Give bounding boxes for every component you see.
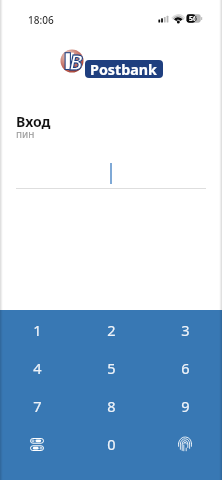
- button[interactable]: Fingerprint login: [148, 425, 222, 463]
- staticText: 5: [107, 358, 116, 378]
- staticText: 8: [107, 396, 116, 416]
- staticText: 7: [33, 396, 42, 416]
- button[interactable]: Settings: [0, 425, 74, 463]
- staticText: 0: [107, 434, 116, 454]
- button[interactable]: 7: [0, 387, 74, 425]
- button[interactable]: 3: [148, 311, 222, 349]
- button[interactable]: 0: [74, 425, 148, 463]
- button[interactable]: 2: [74, 311, 148, 349]
- staticText: пин: [16, 127, 35, 141]
- button[interactable]: 5: [74, 349, 148, 387]
- button[interactable]: 6: [148, 349, 222, 387]
- staticText: Вход: [16, 112, 51, 131]
- staticText: 9: [181, 396, 190, 416]
- staticText: 4: [33, 358, 42, 378]
- button[interactable]: 1: [0, 311, 74, 349]
- button[interactable]: 8: [74, 387, 148, 425]
- staticText: 18:06: [28, 13, 54, 27]
- button[interactable]: 4: [0, 349, 74, 387]
- staticText: Postbank: [90, 60, 157, 79]
- button[interactable]: 9: [148, 387, 222, 425]
- staticText: 2: [107, 320, 116, 340]
- staticText: 1: [33, 320, 42, 340]
- staticText: 6: [181, 358, 190, 378]
- staticText: 3: [181, 320, 190, 340]
